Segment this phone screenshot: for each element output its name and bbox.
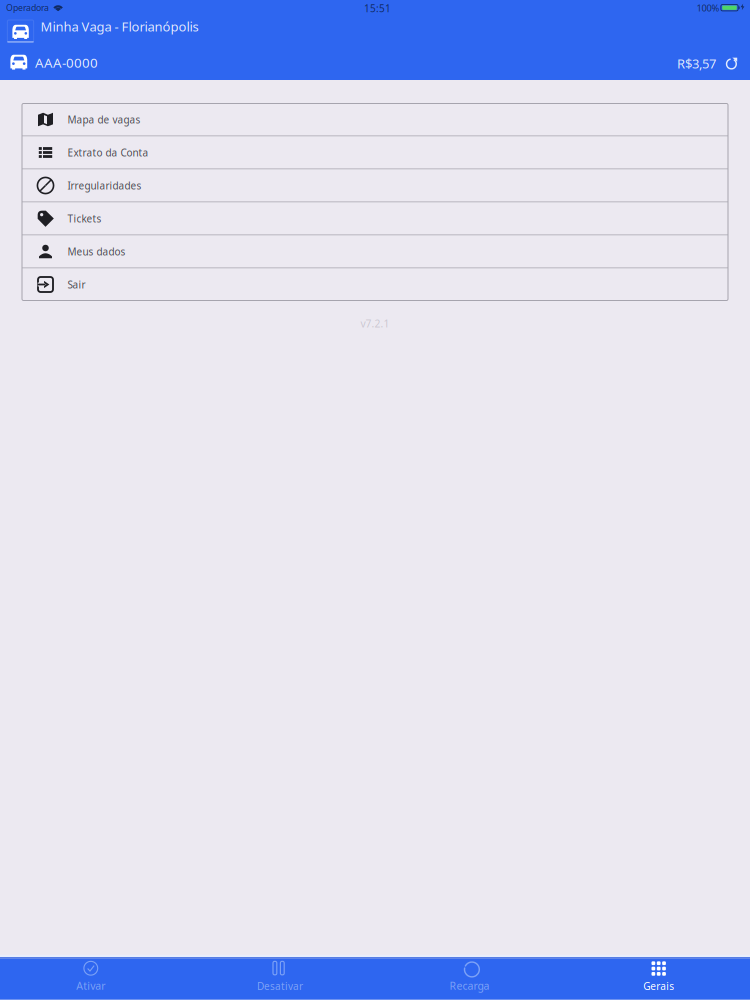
button[interactable]: Veículo — [7, 20, 34, 42]
staticText: Gerais — [643, 979, 674, 993]
staticText: Tickets — [67, 212, 101, 225]
staticText: Recarga — [449, 979, 489, 993]
staticText: v7.2.1 — [360, 316, 389, 331]
button[interactable]: Extrato da Conta — [22, 136, 728, 168]
staticText: Minha Vaga - Florianópolis — [40, 18, 198, 35]
staticText: Operadora — [6, 2, 49, 14]
staticText: Extrato da Conta — [67, 146, 148, 159]
button[interactable]: Desativar — [220, 959, 340, 1000]
button[interactable]: Mapa de vagas — [22, 103, 728, 135]
button[interactable]: Irregularidades — [22, 169, 728, 201]
staticText: Irregularidades — [67, 179, 141, 192]
staticText: Ativar — [76, 979, 105, 993]
button[interactable]: Recarga — [409, 959, 529, 1000]
button[interactable]: Meus dados — [22, 235, 728, 267]
button[interactable]: Tickets — [22, 202, 728, 234]
button[interactable]: Sair — [22, 268, 728, 300]
staticText: 100% — [696, 2, 719, 14]
staticText: Sair — [67, 278, 85, 291]
staticText: AAA-0000 — [35, 53, 98, 72]
staticText: Mapa de vagas — [67, 113, 140, 126]
staticText: Desativar — [257, 979, 303, 993]
button[interactable]: Ativar — [31, 959, 151, 1000]
staticText: R$3,57 — [677, 55, 716, 72]
button[interactable]: Atualizar saldo — [671, 50, 743, 76]
staticText: Meus dados — [67, 245, 125, 258]
button[interactable]: Gerais — [599, 959, 719, 1000]
staticText: 15:51 — [364, 1, 391, 15]
